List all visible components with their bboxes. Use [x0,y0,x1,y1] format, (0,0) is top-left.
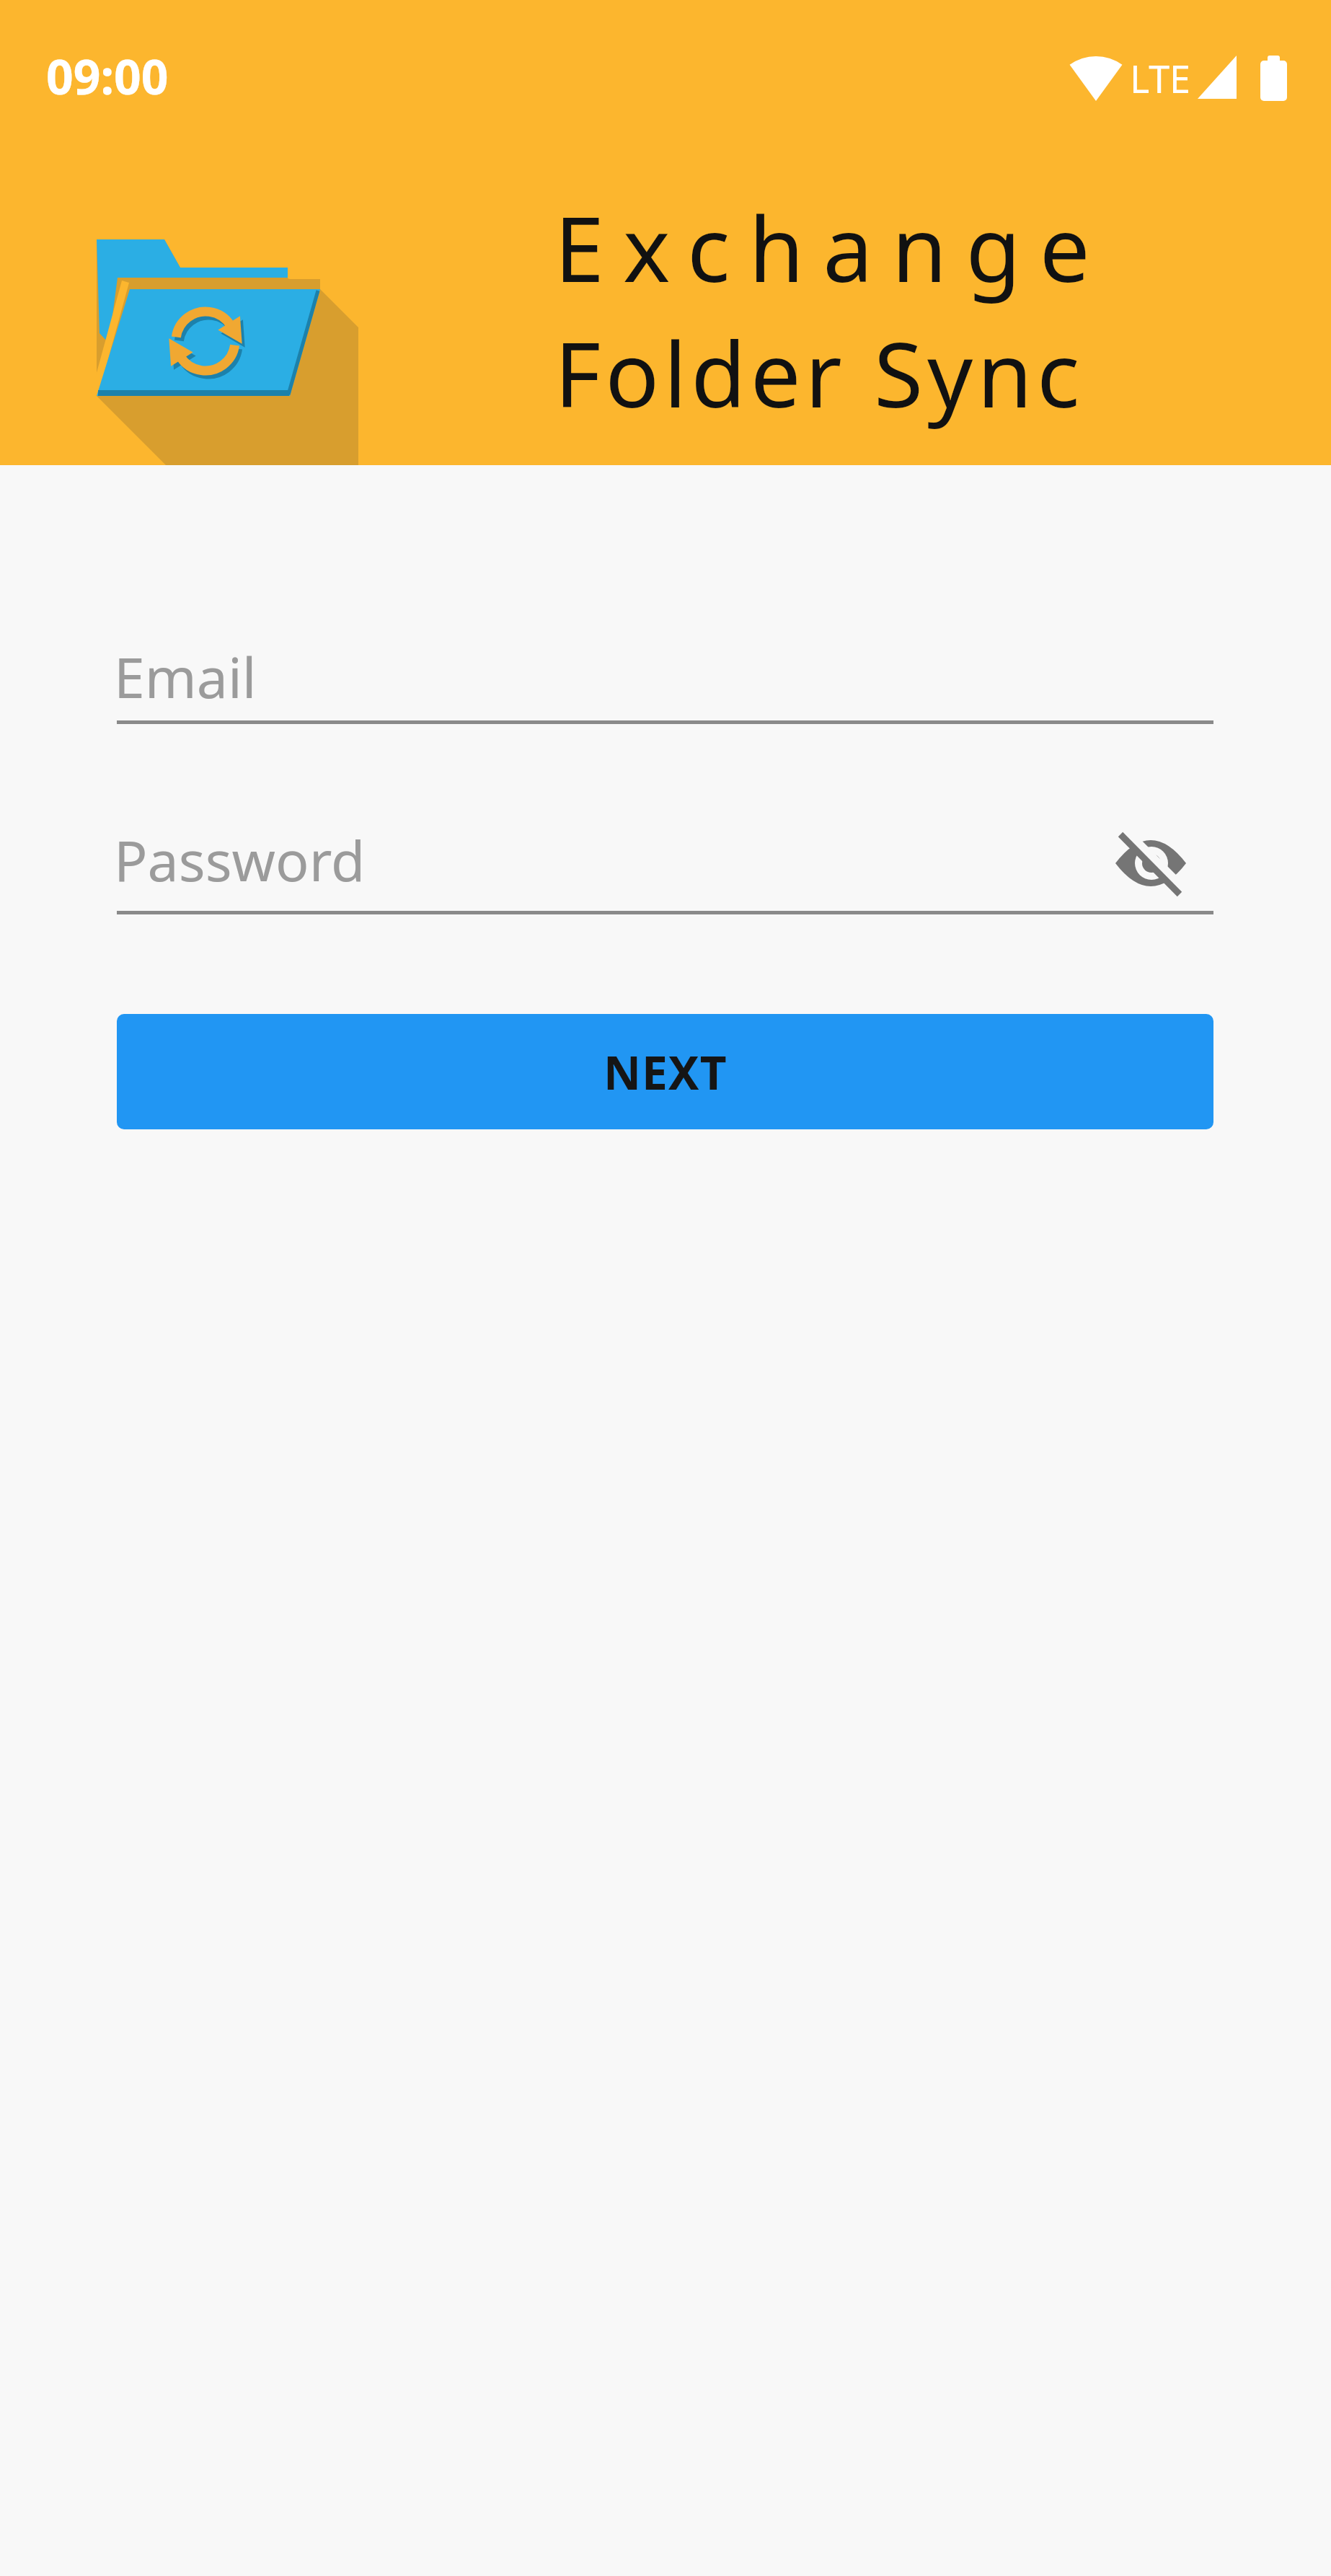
button[interactable]: Email [117,620,1213,728]
staticText: LTE [1130,53,1191,104]
staticText: Password [114,822,366,898]
staticText: 09:00 [46,43,169,108]
staticText: Folder Sync [554,312,1084,433]
staticText: NEXT [603,1041,728,1103]
button[interactable]: Password [117,808,1213,916]
staticText: Exchange [554,186,1109,308]
button[interactable] [1115,827,1187,899]
button[interactable]: NEXT [117,1014,1213,1129]
staticText: Email [114,639,257,715]
